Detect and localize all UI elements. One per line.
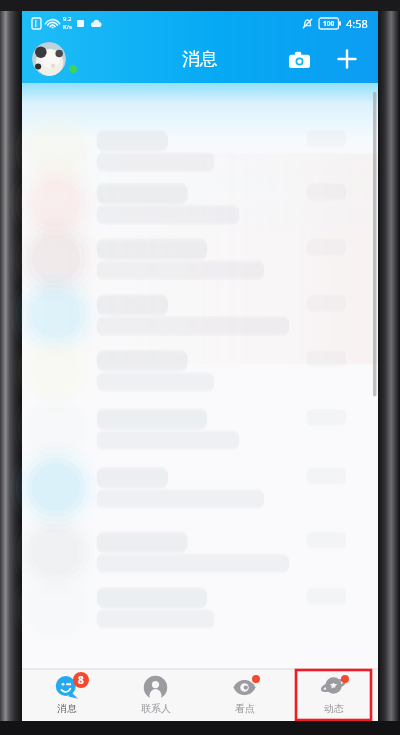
button[interactable]: Chat item [22,604,378,669]
staticText: 看点 [235,702,255,715]
staticText: 联系人 [141,702,171,715]
staticText: K/s [63,23,72,31]
staticText: 消息 [57,702,77,715]
staticText: 4:58 [346,16,368,31]
button[interactable]: 看点 [200,669,289,721]
staticText: 8 [78,673,84,687]
button[interactable]: 8 [22,669,111,721]
staticText: 动态 [324,702,344,715]
button[interactable]: Chat item [22,279,378,344]
staticText: 消息 [182,48,218,71]
button[interactable]: Chat item [22,83,378,149]
staticText: 9.2 [63,15,72,23]
staticText: 100 [323,19,335,28]
button[interactable]: Chat item [22,539,378,604]
button[interactable]: Add [330,42,364,76]
button[interactable]: Chat item [22,344,378,409]
button[interactable]: Chat item [22,409,378,474]
button[interactable]: Chat item [22,149,378,214]
button[interactable]: Profile [32,42,77,76]
button[interactable]: 联系人 [111,669,200,721]
button[interactable]: 动态 [289,669,378,721]
button[interactable]: Chat item [22,474,378,539]
button[interactable]: Camera [282,42,316,76]
button[interactable]: Chat item [22,214,378,279]
